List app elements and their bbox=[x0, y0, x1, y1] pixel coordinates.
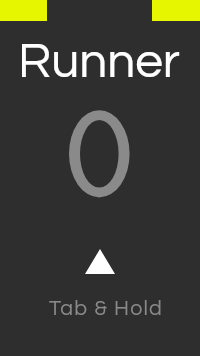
button[interactable]: Runner bbox=[0, 0, 200, 356]
other: Jump bbox=[85, 249, 115, 274]
staticText: Tab & Hold bbox=[49, 297, 164, 319]
staticText: Runner bbox=[18, 36, 180, 87]
